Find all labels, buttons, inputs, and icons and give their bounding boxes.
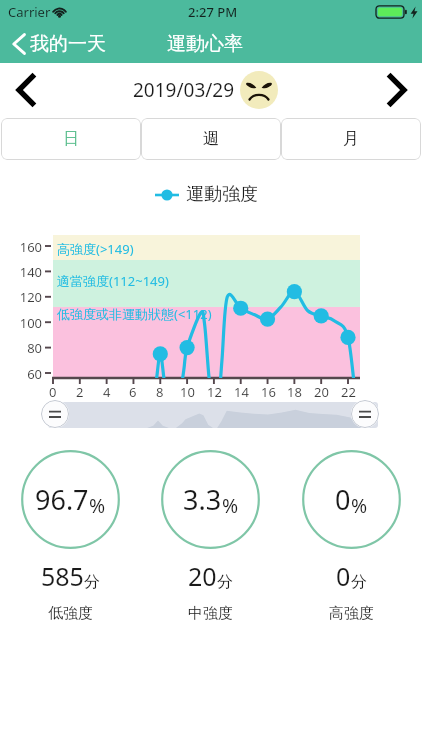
staticText: 中強度 xyxy=(188,604,233,623)
staticText: 14 xyxy=(234,383,249,401)
staticText: 我的一天 xyxy=(30,32,106,56)
staticText: 適當強度(112~149) xyxy=(57,272,169,290)
staticText: 4 xyxy=(103,383,111,401)
button[interactable]: Next day xyxy=(376,70,416,110)
staticText: 96.7 xyxy=(35,481,89,518)
staticText: 160 xyxy=(19,238,42,256)
staticText: 月 xyxy=(343,129,359,149)
staticText: 日 xyxy=(63,129,79,149)
staticText: 高強度(>149) xyxy=(57,240,134,258)
button[interactable]: 0 xyxy=(281,445,422,625)
staticText: 運動強度 xyxy=(186,183,258,206)
staticText: 140 xyxy=(19,263,42,281)
staticText: % xyxy=(351,492,368,518)
staticText: 低強度或非運動狀態(<112) xyxy=(57,305,212,323)
staticText: 2019/03/29 xyxy=(133,77,235,103)
staticText: 運動心率 xyxy=(167,32,243,56)
button[interactable]: 日 xyxy=(1,118,141,160)
button[interactable]: 我的一天 xyxy=(0,27,116,61)
staticText: 585 xyxy=(41,559,84,593)
staticText: % xyxy=(222,492,239,518)
staticText: 20 xyxy=(188,559,217,593)
staticText: 18 xyxy=(287,383,302,401)
button[interactable]: Range handle xyxy=(41,400,69,428)
button[interactable]: 週 xyxy=(141,118,281,160)
staticText: % xyxy=(89,492,106,518)
staticText: 22 xyxy=(341,383,356,401)
staticText: 低強度 xyxy=(48,604,93,623)
staticText: 16 xyxy=(261,383,276,401)
staticText: 0 xyxy=(336,559,351,593)
button[interactable]: Previous day xyxy=(6,70,46,110)
staticText: 週 xyxy=(203,129,219,149)
staticText: 分 xyxy=(84,572,100,592)
staticText: 2:27 PM xyxy=(188,3,238,21)
button[interactable]: 月 xyxy=(281,118,421,160)
staticText: 10 xyxy=(180,383,195,401)
staticText: 8 xyxy=(156,383,164,401)
staticText: 12 xyxy=(207,383,222,401)
button[interactable]: 運動強度 xyxy=(155,183,258,206)
staticText: 100 xyxy=(19,314,42,332)
staticText: Carrier xyxy=(8,3,51,21)
staticText: 120 xyxy=(19,288,42,306)
staticText: 60 xyxy=(27,365,42,383)
button[interactable]: 96.7 xyxy=(0,445,140,625)
button[interactable]: 3.3 xyxy=(140,445,281,625)
staticText: 80 xyxy=(27,339,42,357)
staticText: 0 xyxy=(49,383,57,401)
staticText: 2 xyxy=(76,383,84,401)
staticText: 高強度 xyxy=(329,604,374,623)
staticText: 0 xyxy=(335,481,351,518)
staticText: 20 xyxy=(314,383,329,401)
staticText: 分 xyxy=(217,572,233,592)
staticText: 3.3 xyxy=(183,481,222,518)
staticText: 分 xyxy=(351,572,367,592)
staticText: 6 xyxy=(129,383,137,401)
button[interactable]: Range handle xyxy=(351,400,379,428)
